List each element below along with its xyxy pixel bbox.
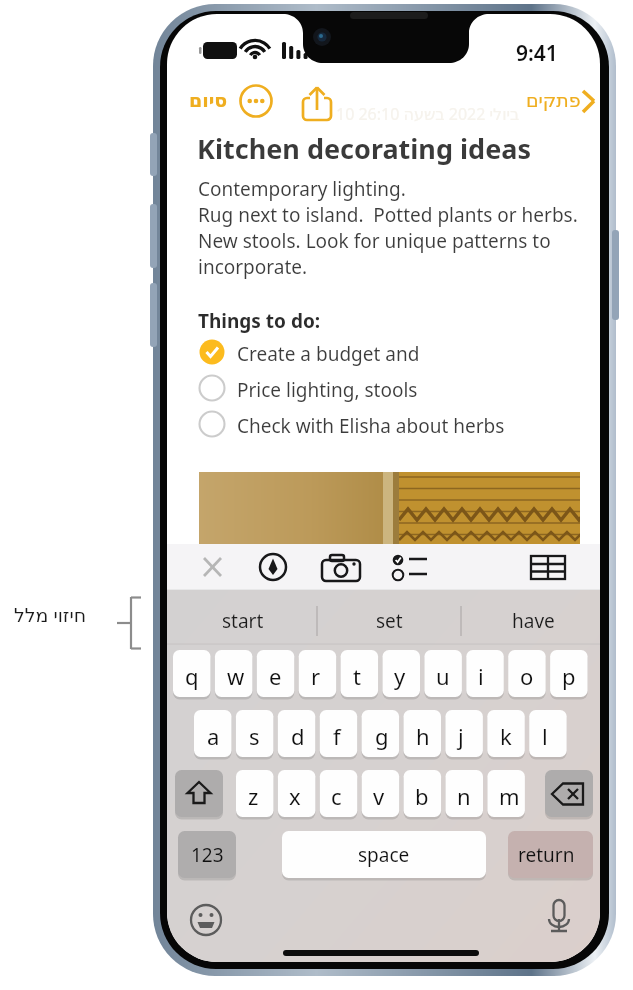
staticText: 10 ביולי 2022 בשעה 26:10 — [336, 103, 520, 125]
button[interactable]: Table — [528, 547, 570, 587]
staticText: p — [562, 661, 576, 691]
button[interactable]: o — [508, 650, 546, 697]
button[interactable]: Numbers — [178, 831, 236, 878]
button[interactable]: Emoji — [189, 903, 223, 937]
button[interactable]: m — [487, 770, 525, 817]
staticText: u — [436, 661, 450, 691]
staticText: פתקים — [526, 89, 581, 111]
staticText: v — [373, 781, 385, 811]
button[interactable]: f — [320, 710, 358, 757]
staticText: 123 — [191, 842, 224, 868]
staticText: have — [512, 608, 555, 634]
button[interactable]: k — [487, 710, 525, 757]
button[interactable]: Camera — [320, 547, 364, 587]
staticText: start — [222, 608, 264, 634]
button[interactable]: z — [236, 770, 274, 817]
button[interactable]: b — [404, 770, 442, 817]
staticText: set — [376, 608, 403, 634]
button[interactable]: e — [257, 650, 295, 697]
staticText: o — [520, 661, 534, 691]
staticText: Contemporary lighting. — [198, 176, 406, 202]
button[interactable]: Backspace — [545, 770, 593, 817]
staticText: חיזוי מלל — [14, 602, 87, 628]
staticText: h — [416, 721, 430, 751]
button[interactable]: q — [173, 650, 211, 697]
button[interactable]: s — [236, 710, 274, 757]
staticText: Check with Elisha about herbs — [237, 413, 505, 439]
button[interactable]: c — [320, 770, 358, 817]
staticText: incorporate. — [198, 254, 308, 280]
button[interactable]: a — [194, 710, 232, 757]
button[interactable]: Markup — [254, 547, 294, 587]
button[interactable]: u — [424, 650, 462, 697]
staticText: w — [227, 661, 245, 691]
button[interactable]: Done — [185, 83, 231, 119]
staticText: r — [311, 661, 321, 691]
button[interactable]: r — [299, 650, 337, 697]
button[interactable]: start — [175, 600, 316, 643]
button[interactable]: l — [529, 710, 567, 757]
staticText: s — [249, 721, 260, 751]
staticText: f — [333, 721, 341, 751]
button[interactable]: w — [215, 650, 253, 697]
staticText: j — [458, 721, 464, 751]
staticText: 9:41 — [516, 39, 558, 68]
staticText: New stools. Look for unique patterns to — [198, 228, 551, 254]
staticText: b — [415, 781, 429, 811]
button[interactable]: h — [403, 710, 441, 757]
button[interactable]: Dictation — [542, 898, 576, 936]
staticText: l — [542, 721, 548, 751]
button[interactable]: g — [362, 710, 400, 757]
button[interactable]: i — [466, 650, 504, 697]
staticText: Create a budget and — [237, 341, 420, 367]
button[interactable]: Back to Notes — [520, 82, 600, 120]
staticText: Rug next to island. Potted plants or her… — [198, 202, 578, 228]
button[interactable]: x — [278, 770, 316, 817]
button[interactable]: space — [282, 831, 486, 878]
button[interactable]: Price lighting, stools — [199, 373, 461, 405]
staticText: c — [331, 781, 342, 811]
staticText: Things to do: — [198, 308, 321, 334]
staticText: t — [353, 661, 361, 691]
staticText: y — [394, 661, 406, 691]
staticText: סיום — [189, 89, 228, 111]
button[interactable]: Checklist — [390, 547, 434, 587]
button[interactable]: y — [382, 650, 420, 697]
staticText: Kitchen decorating ideas — [197, 130, 531, 167]
button[interactable]: Close keyboard — [195, 547, 235, 587]
staticText: m — [499, 781, 520, 811]
staticText: k — [500, 721, 512, 751]
staticText: n — [457, 781, 471, 811]
staticText: x — [289, 781, 301, 811]
button[interactable]: p — [550, 650, 588, 697]
staticText: return — [518, 842, 575, 868]
button[interactable]: return — [508, 831, 593, 878]
button[interactable]: Share — [298, 82, 338, 124]
button[interactable]: Check with Elisha about herbs — [199, 409, 511, 441]
button[interactable]: d — [278, 710, 316, 757]
staticText: a — [207, 721, 220, 751]
staticText: q — [185, 661, 199, 691]
button[interactable]: j — [445, 710, 483, 757]
button[interactable]: Create a budget and — [199, 337, 461, 369]
staticText: i — [478, 661, 484, 691]
button[interactable]: More options — [238, 83, 276, 121]
staticText: g — [375, 721, 389, 751]
button[interactable]: Shift — [175, 770, 223, 817]
staticText: d — [291, 721, 305, 751]
staticText: space — [358, 842, 410, 868]
button[interactable]: v — [362, 770, 400, 817]
staticText: e — [269, 661, 282, 691]
button[interactable]: have — [463, 600, 598, 643]
button[interactable]: set — [318, 600, 460, 643]
staticText: z — [248, 781, 259, 811]
button[interactable]: n — [445, 770, 483, 817]
button[interactable]: t — [341, 650, 379, 697]
staticText: Price lighting, stools — [237, 377, 418, 403]
